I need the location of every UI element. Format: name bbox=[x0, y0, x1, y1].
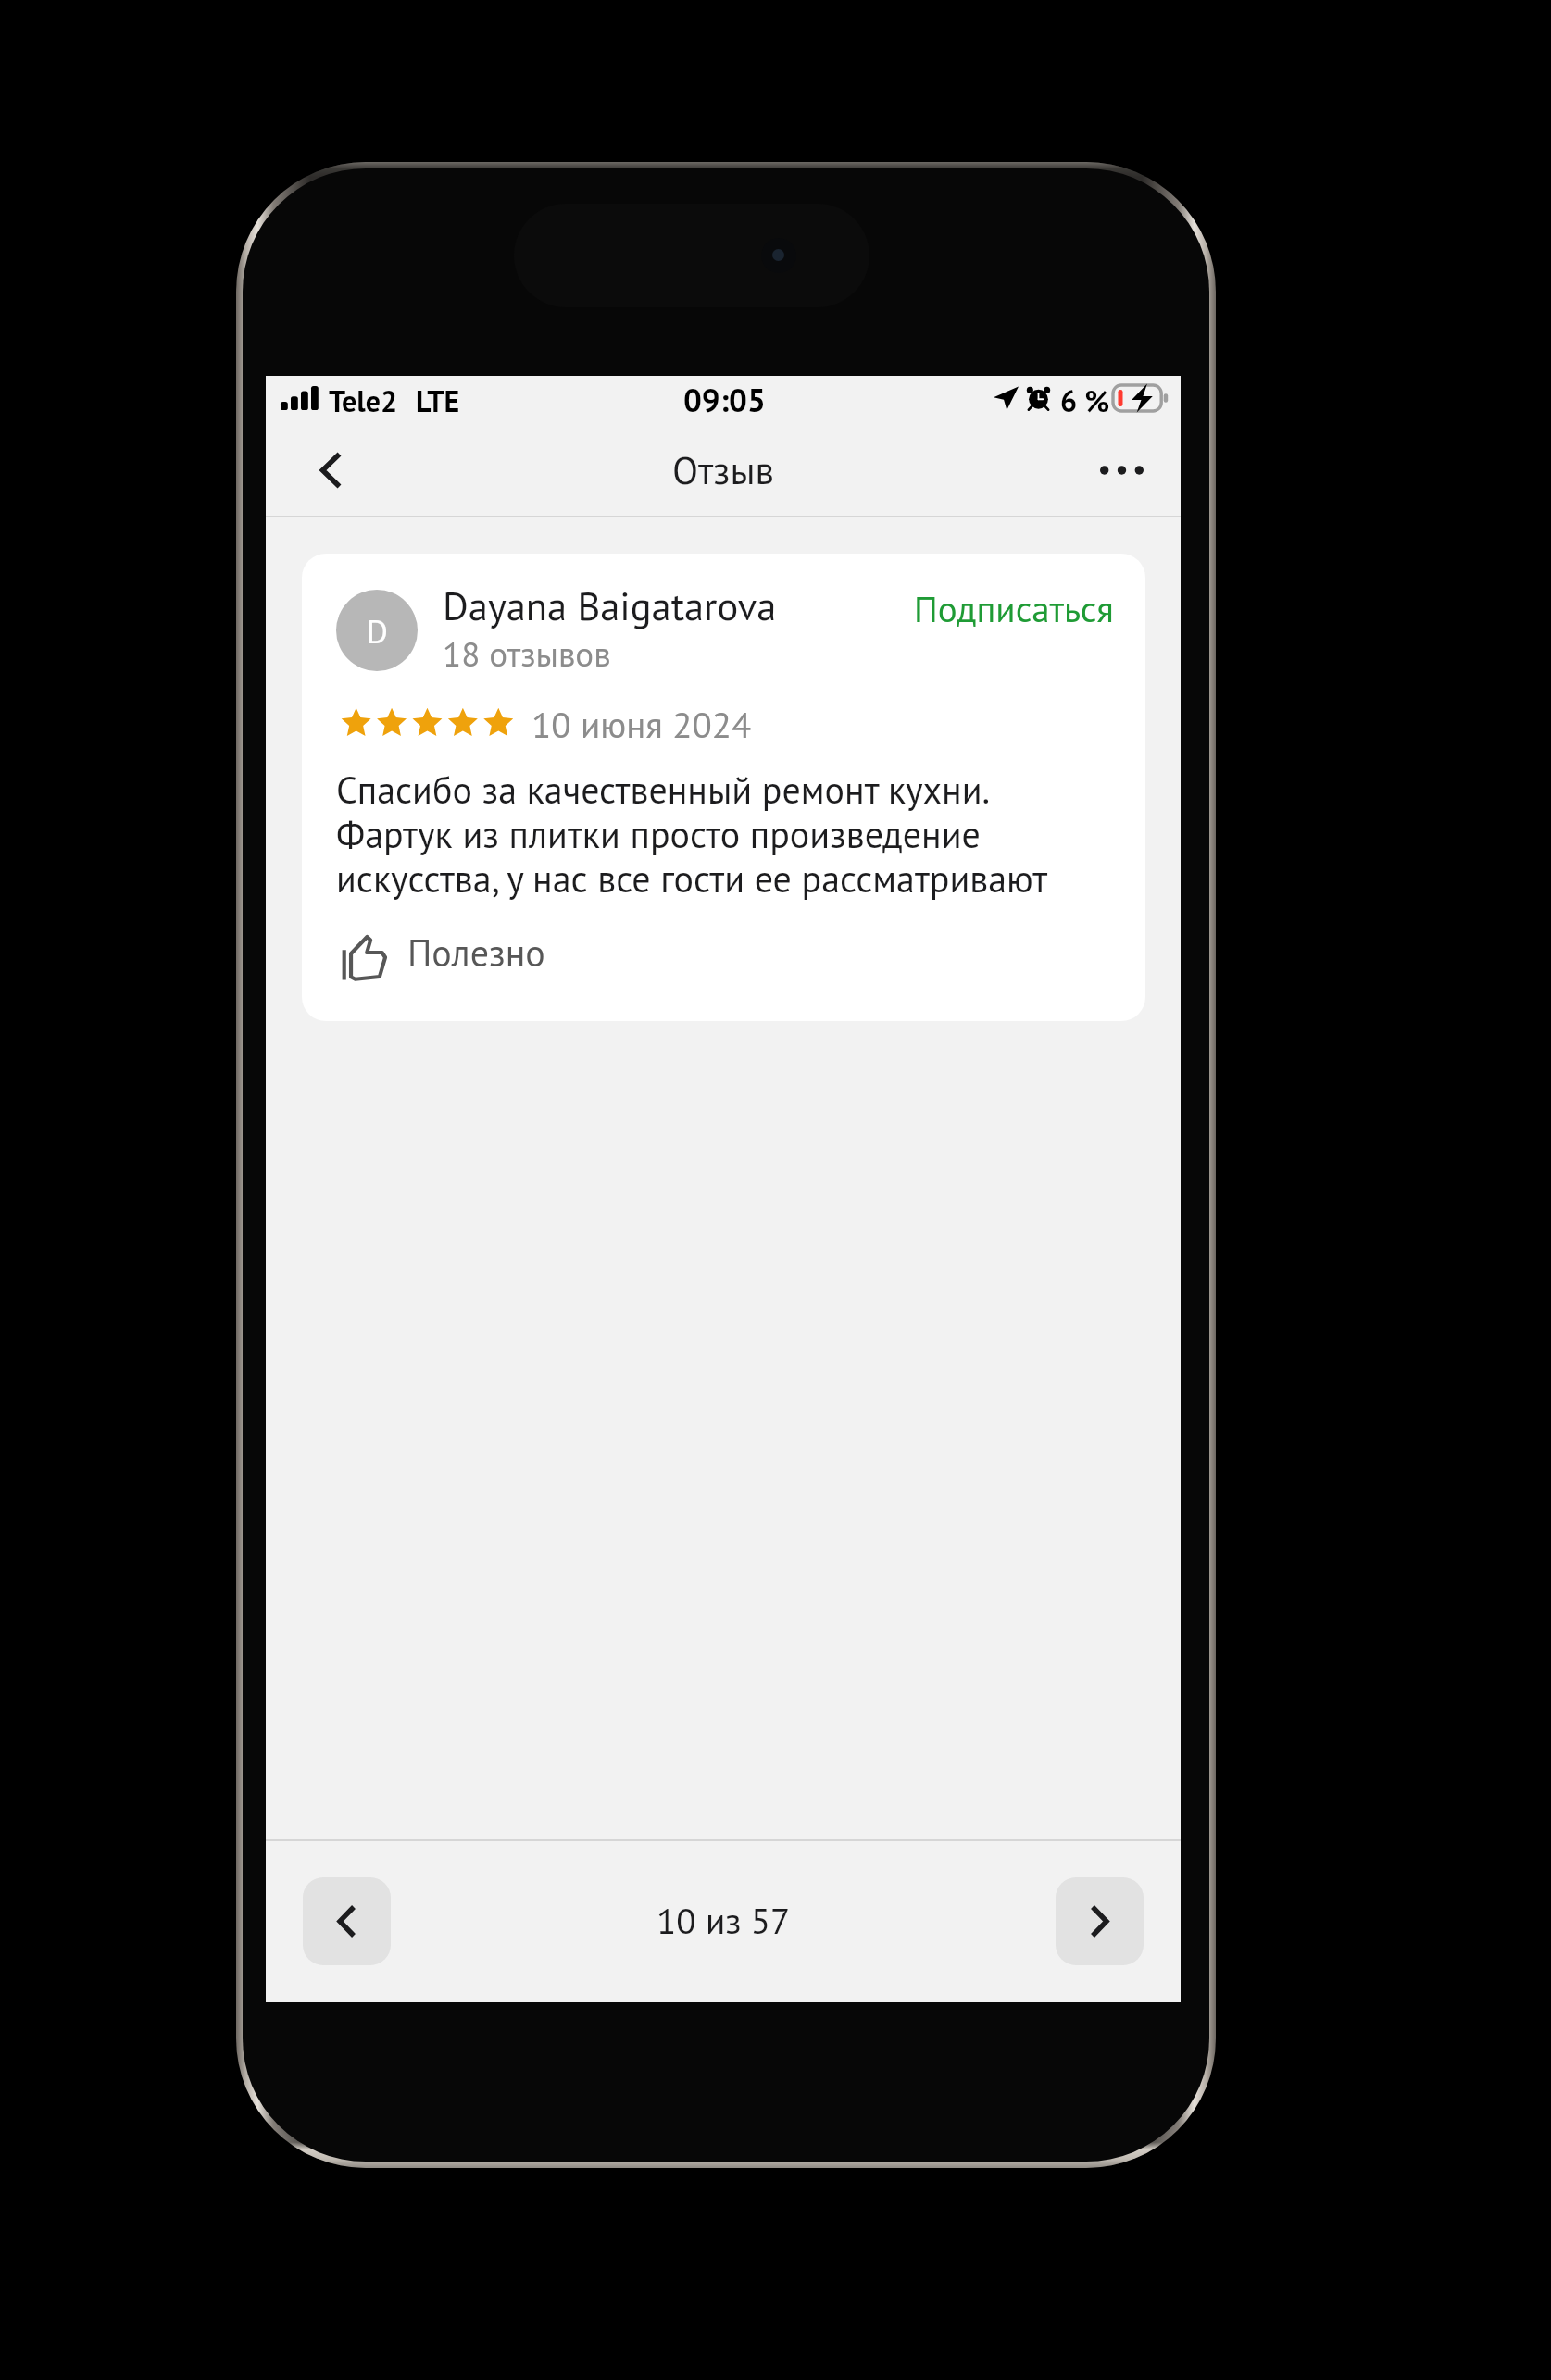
staticText: Подписаться bbox=[914, 585, 1114, 631]
button[interactable]: Back bbox=[299, 434, 362, 506]
staticText: Dayana Baigatarova bbox=[443, 580, 777, 631]
staticText: 10 июня 2024 bbox=[532, 701, 752, 747]
button[interactable]: Полезно bbox=[336, 926, 586, 987]
staticText: 18 отзывов bbox=[443, 631, 611, 676]
staticText: LTE bbox=[416, 381, 460, 419]
staticText: 09:05 bbox=[683, 379, 766, 420]
staticText: Tele2 bbox=[329, 381, 398, 419]
staticText: Спасибо за качественный ремонт кухни. Фа… bbox=[336, 766, 1048, 903]
staticText: 10 из 57 bbox=[657, 1897, 791, 1943]
button[interactable]: Next page bbox=[1056, 1877, 1144, 1965]
button[interactable]: More options bbox=[1085, 434, 1157, 506]
button[interactable]: Previous page bbox=[303, 1877, 391, 1965]
staticText: D bbox=[367, 610, 388, 652]
staticText: Полезно bbox=[407, 928, 545, 977]
staticText: 6 % bbox=[1060, 381, 1110, 419]
button[interactable]: Подписаться bbox=[908, 579, 1116, 637]
staticText: Отзыв bbox=[672, 445, 774, 494]
